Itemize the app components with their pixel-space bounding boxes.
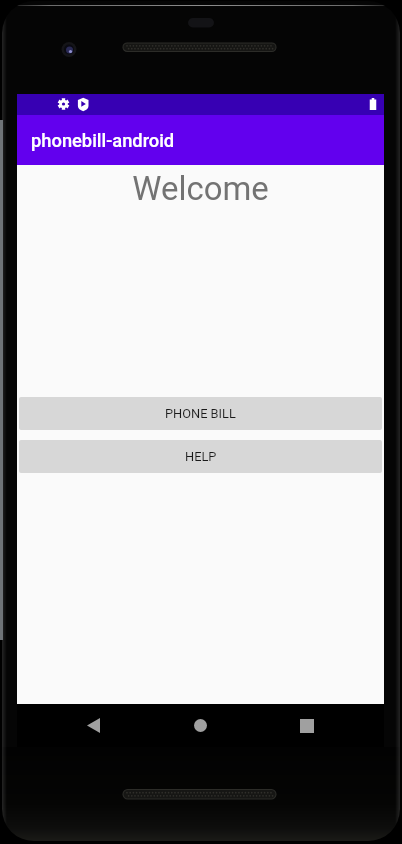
staticText: phonebill-android (31, 130, 175, 151)
staticText: HELP (185, 449, 217, 464)
staticText: PHONE BILL (165, 406, 236, 421)
button[interactable]: Back (72, 704, 115, 747)
staticText: Welcome (17, 169, 384, 208)
button[interactable]: Recents (285, 704, 328, 747)
button[interactable]: Home (179, 704, 222, 747)
button[interactable]: PHONE BILL (19, 397, 382, 430)
button[interactable]: HELP (19, 440, 382, 473)
